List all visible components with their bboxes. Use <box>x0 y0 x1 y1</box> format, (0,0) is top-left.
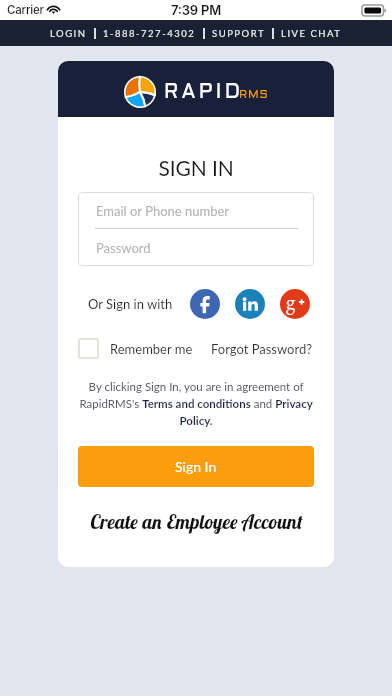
button[interactable]: Password <box>78 229 314 266</box>
staticText: Forgot Password? <box>211 341 313 357</box>
button[interactable]: Email or Phone number <box>78 192 314 229</box>
staticText: Sign In <box>175 458 217 475</box>
staticText: Password <box>96 240 151 256</box>
staticText: Create an Employee Account <box>90 509 303 533</box>
button[interactable]: Sign in with Google Plus <box>280 289 310 319</box>
staticText: Email or Phone number <box>96 203 230 219</box>
staticText: RMS <box>239 90 269 101</box>
staticText: Carrier <box>7 3 44 17</box>
staticText: LIVE CHAT <box>281 28 342 39</box>
button[interactable]: Sign in with LinkedIn <box>235 289 265 319</box>
staticText: SUPPORT <box>212 28 265 39</box>
button[interactable]: SUPPORT <box>211 28 266 39</box>
button[interactable]: Sign in with Facebook <box>190 289 220 319</box>
staticText: g <box>286 289 296 315</box>
staticText: By clicking Sign In, you are in agreemen… <box>77 380 315 427</box>
staticText: SIGN IN <box>58 155 334 180</box>
staticText: RAPID <box>164 84 244 103</box>
button[interactable]: Remember me <box>78 338 193 359</box>
button[interactable]: Sign In <box>78 446 314 487</box>
button[interactable]: Create an Employee Account <box>58 509 334 533</box>
button[interactable]: Forgot Password? <box>211 341 313 357</box>
staticText: Or Sign in with <box>88 296 173 312</box>
button[interactable]: 1-888-727-4302 <box>102 28 197 39</box>
staticText: 7:39 PM <box>171 2 222 18</box>
staticText: LOGIN <box>50 28 87 39</box>
button[interactable]: LOGIN <box>49 28 88 39</box>
button[interactable]: LIVE CHAT <box>280 28 343 39</box>
staticText: 1-888-727-4302 <box>103 28 196 39</box>
staticText: Remember me <box>110 341 193 357</box>
